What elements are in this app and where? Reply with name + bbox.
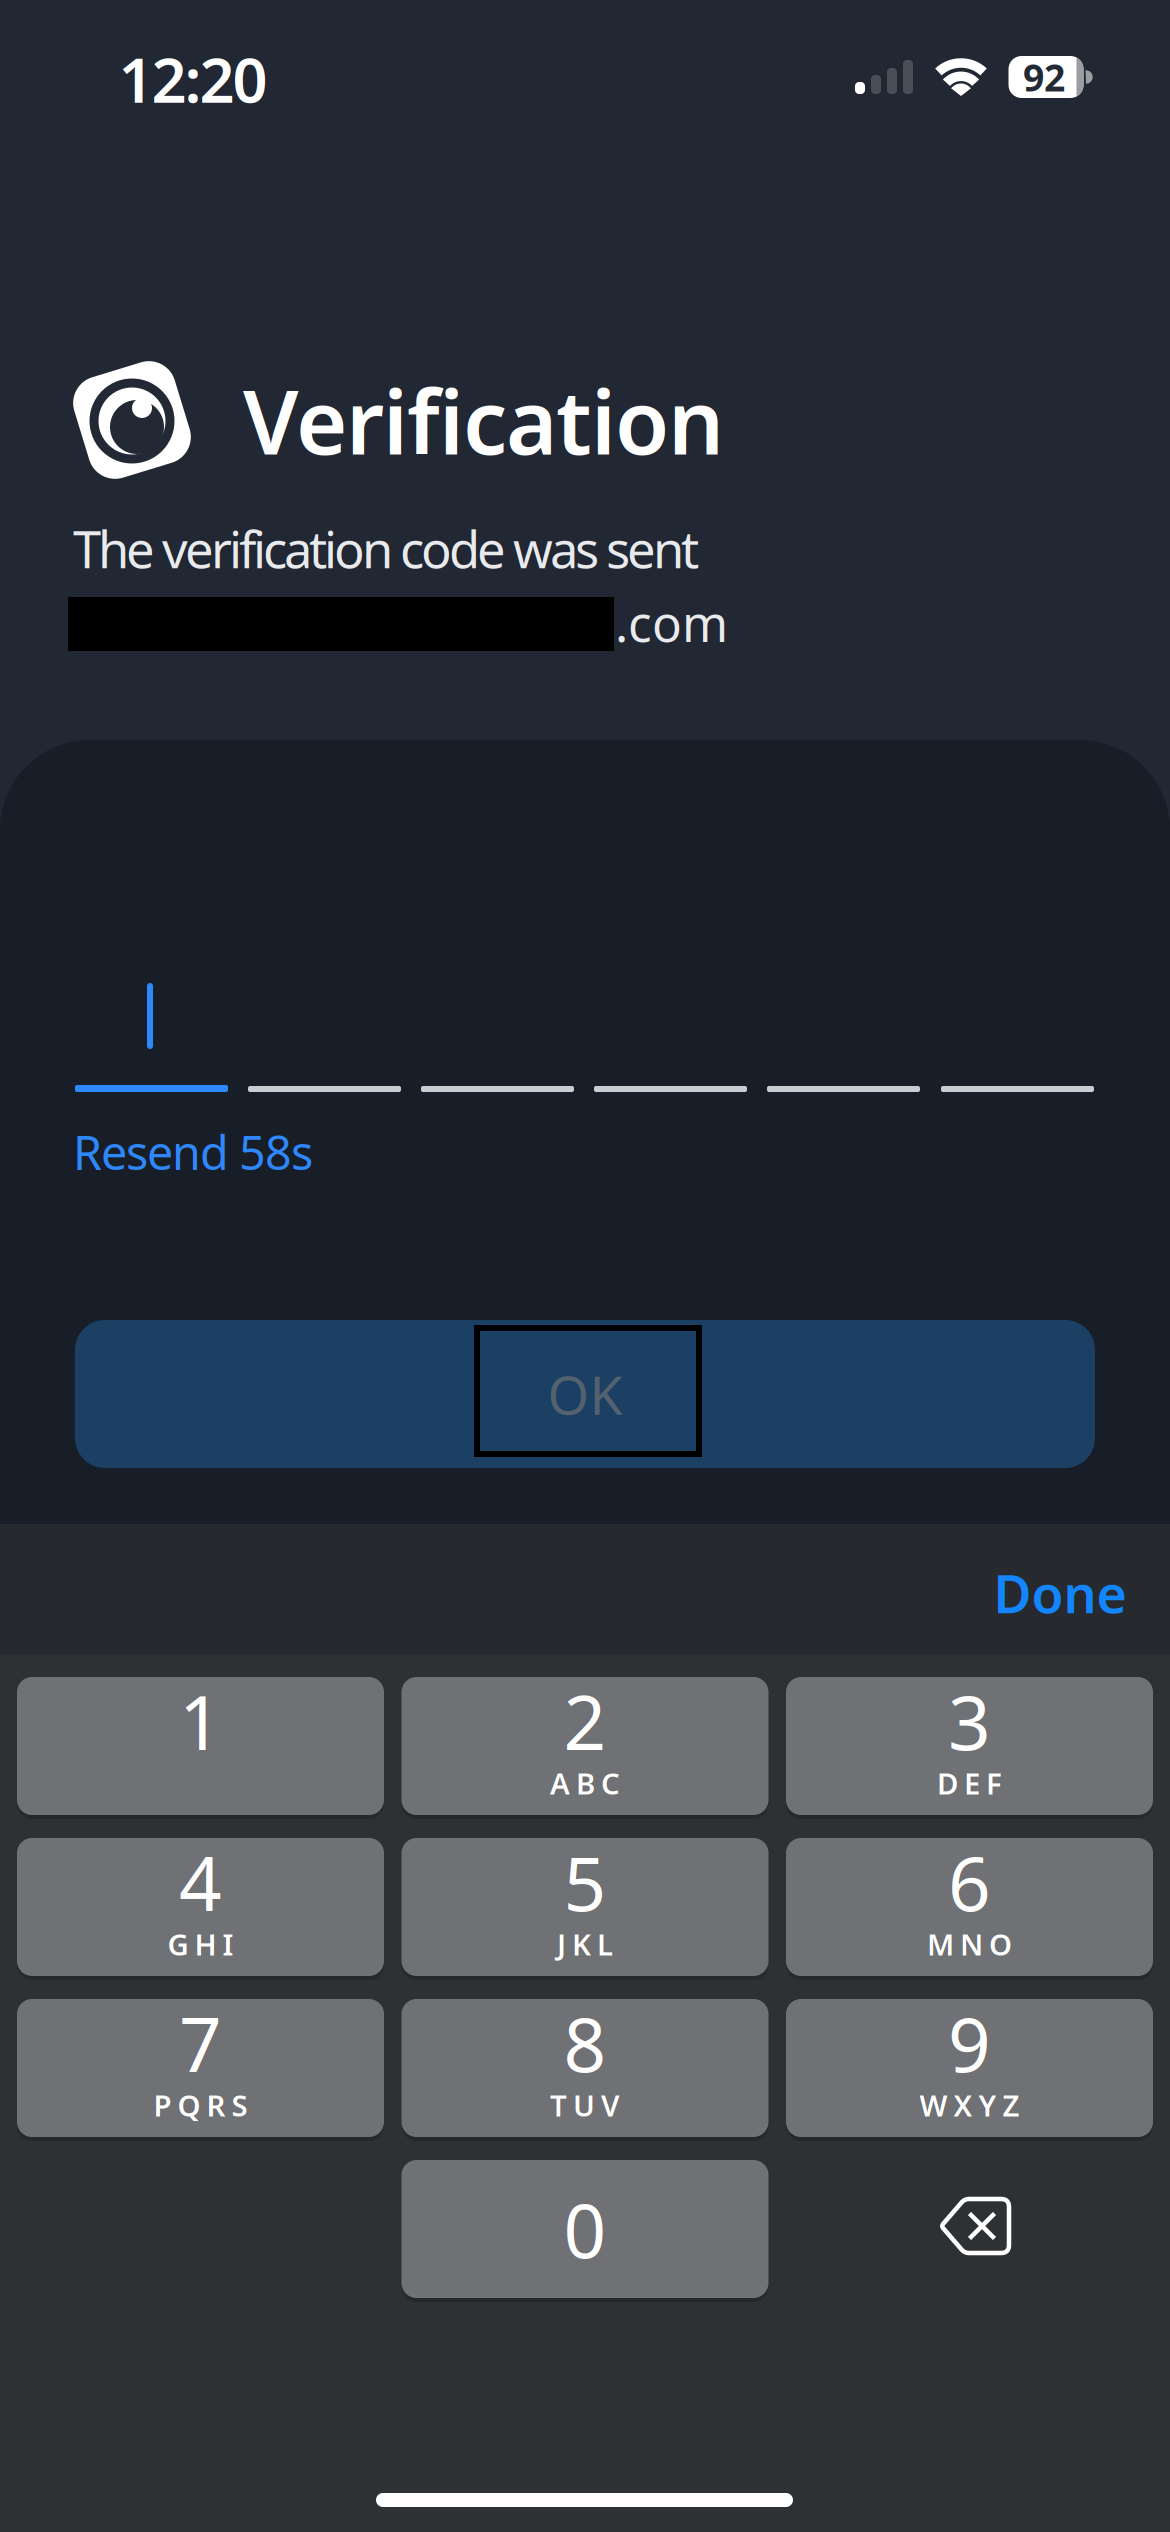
staticText: ABC (550, 1763, 620, 1802)
button[interactable]: 2 (401, 1677, 768, 1815)
button[interactable]: 3 (786, 1677, 1153, 1815)
staticText: Resend 58s (73, 1121, 313, 1183)
staticText: JKL (557, 1924, 613, 1963)
staticText: 7 (179, 1993, 222, 2093)
staticText: 3 (948, 1671, 991, 1771)
staticText: OK (547, 1359, 622, 1429)
button[interactable]: 9 (786, 1999, 1153, 2137)
button[interactable]: 8 (401, 1999, 768, 2137)
button[interactable]: 7 (17, 1999, 384, 2137)
button[interactable]: Delete (941, 2197, 1011, 2255)
staticText: 9 (948, 1993, 991, 2093)
staticText: 0 (563, 2179, 606, 2279)
staticText: WXYZ (919, 2085, 1019, 2124)
staticText: .com (615, 590, 728, 655)
staticText: 1 (179, 1671, 222, 1771)
staticText: GHI (167, 1924, 233, 1963)
button[interactable]: Done (993, 1558, 1126, 1628)
button[interactable]: 4 (17, 1838, 384, 1976)
button[interactable]: 6 (786, 1838, 1153, 1976)
staticText: 6 (948, 1832, 991, 1932)
button[interactable]: 1 (17, 1677, 384, 1815)
staticText: Verification (243, 362, 724, 479)
staticText: MNO (927, 1924, 1012, 1963)
staticText: 5 (563, 1832, 606, 1932)
button[interactable]: Resend 58s (73, 1121, 313, 1183)
staticText: TUV (550, 2085, 620, 2124)
staticText: 92 (1023, 52, 1065, 102)
staticText: 4 (179, 1832, 222, 1932)
button[interactable]: 0 (401, 2160, 768, 2298)
button[interactable]: OK (75, 1320, 1095, 1468)
staticText: 12:20 (118, 38, 267, 120)
button[interactable]: 5 (401, 1838, 768, 1976)
staticText: 8 (563, 1993, 606, 2093)
staticText: Done (993, 1558, 1126, 1628)
staticText: 2 (563, 1671, 606, 1771)
staticText: PQRS (153, 2085, 247, 2124)
staticText: The verification code was sent (73, 515, 699, 582)
staticText: DEF (937, 1763, 1002, 1802)
